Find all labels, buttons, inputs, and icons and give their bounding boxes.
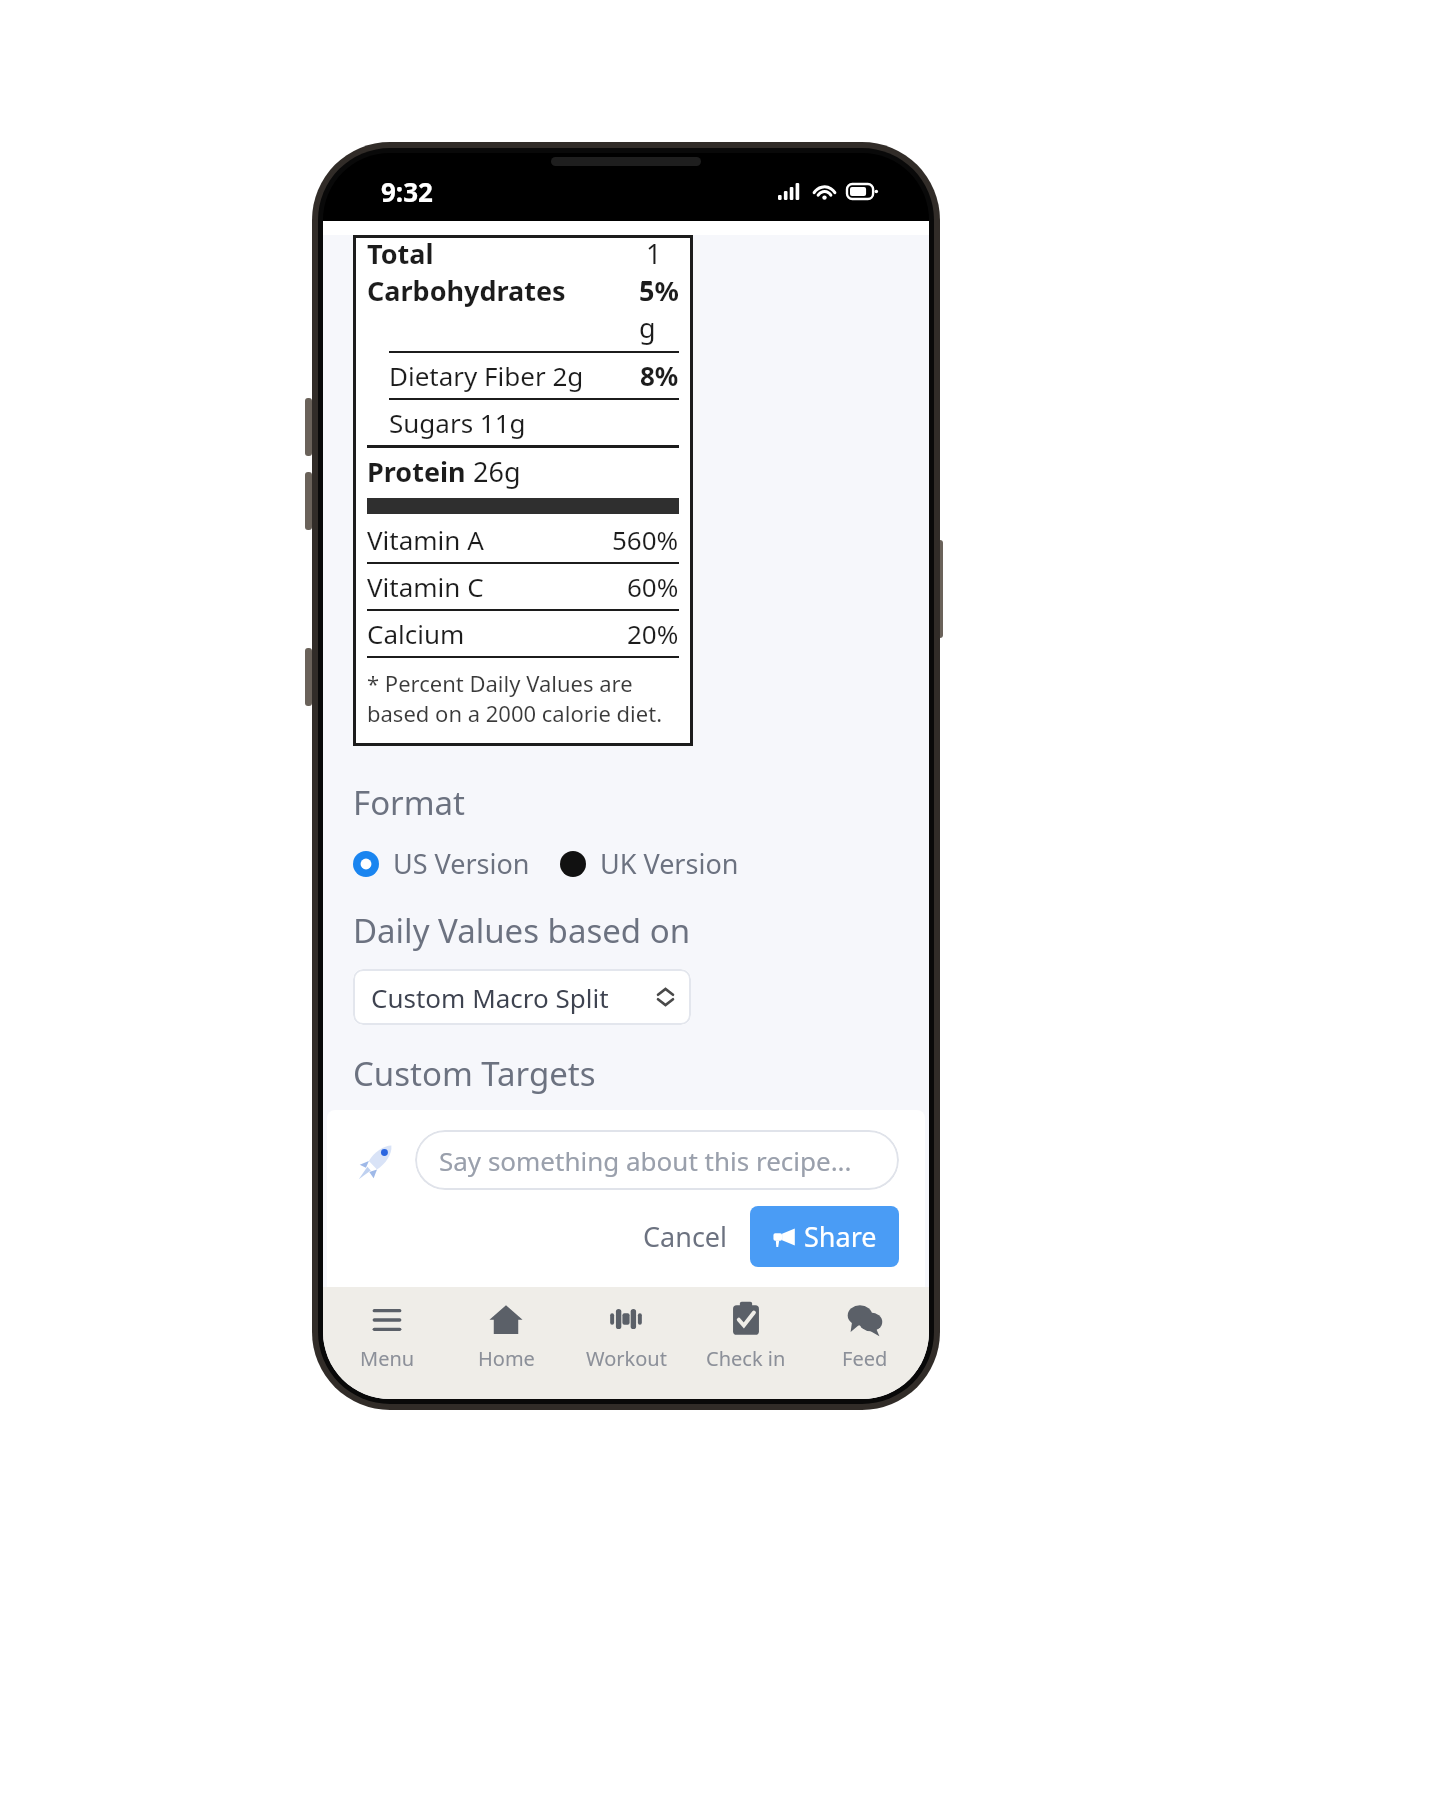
staticText: Protein [367,453,466,490]
button[interactable]: Home [450,1287,562,1372]
staticText: US Version [393,845,530,882]
button[interactable]: Custom Macro Split [353,969,691,1025]
staticText: Menu [360,1345,415,1372]
other: Rocket [353,1136,401,1184]
staticText: Custom Targets [353,1051,596,1096]
staticText: Dietary Fiber 2g [389,358,584,393]
staticText: * Percent Daily Values are based on a 20… [367,668,679,728]
staticText: Say something about this recipe... [439,1143,852,1178]
staticText: 560% [612,522,679,557]
button[interactable]: Check in [690,1287,802,1372]
staticText: Total Carbohydrates [367,235,639,309]
button[interactable]: Feed [809,1287,921,1372]
staticText: 26g [466,453,521,490]
staticText: 8% [640,358,679,393]
other: Check in [728,1301,764,1337]
button[interactable]: Share [750,1206,899,1267]
staticText: 5% [639,272,679,309]
other: Home [488,1301,524,1337]
staticText: Vitamin C [367,569,484,604]
staticText: Check in [706,1345,786,1372]
staticText: Sugars 11g [389,405,526,440]
staticText: 9:32 [381,174,433,209]
staticText: Cancel [643,1218,728,1255]
button[interactable]: Workout [570,1287,682,1372]
staticText: Custom Macro Split [371,980,609,1015]
other: Workout [608,1301,644,1337]
staticText: Vitamin A [367,522,484,557]
staticText: Feed [842,1345,888,1372]
staticText: 20% [627,616,679,651]
other: Feed [847,1301,883,1337]
staticText: Share [804,1218,877,1255]
button[interactable]: Cancel [631,1210,740,1263]
staticText: 60% [627,569,679,604]
button[interactable]: US Version [353,845,530,882]
staticText: Daily Values based on [353,908,691,953]
staticText: Home [478,1345,535,1372]
staticText: Calcium [367,616,465,651]
button[interactable]: Menu [331,1287,443,1372]
staticText: Workout [586,1345,667,1372]
button[interactable]: Say something about this recipe... [415,1130,899,1190]
staticText: Format [353,780,466,825]
other: Menu [369,1301,405,1337]
staticText: UK Version [600,845,739,882]
button[interactable]: UK Version [560,845,739,882]
